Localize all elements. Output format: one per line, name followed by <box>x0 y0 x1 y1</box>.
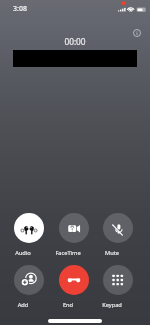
button[interactable]: Call info <box>130 26 144 40</box>
staticText: 3:08 <box>13 4 27 14</box>
button[interactable]: FaceTime <box>59 213 89 256</box>
button[interactable]: Add <box>14 265 44 308</box>
staticText: Keypad <box>97 301 127 309</box>
staticText: FaceTime <box>53 249 83 257</box>
staticText: End <box>53 301 83 309</box>
staticText: Mute <box>97 249 127 257</box>
staticText: Add <box>8 301 38 309</box>
button[interactable]: Audio <box>14 213 44 256</box>
staticText: Audio <box>8 249 38 257</box>
button[interactable]: Keypad <box>103 265 133 308</box>
button[interactable]: Mute <box>103 213 133 256</box>
button[interactable]: End <box>59 265 89 308</box>
staticText: 00:00 <box>0 36 150 325</box>
